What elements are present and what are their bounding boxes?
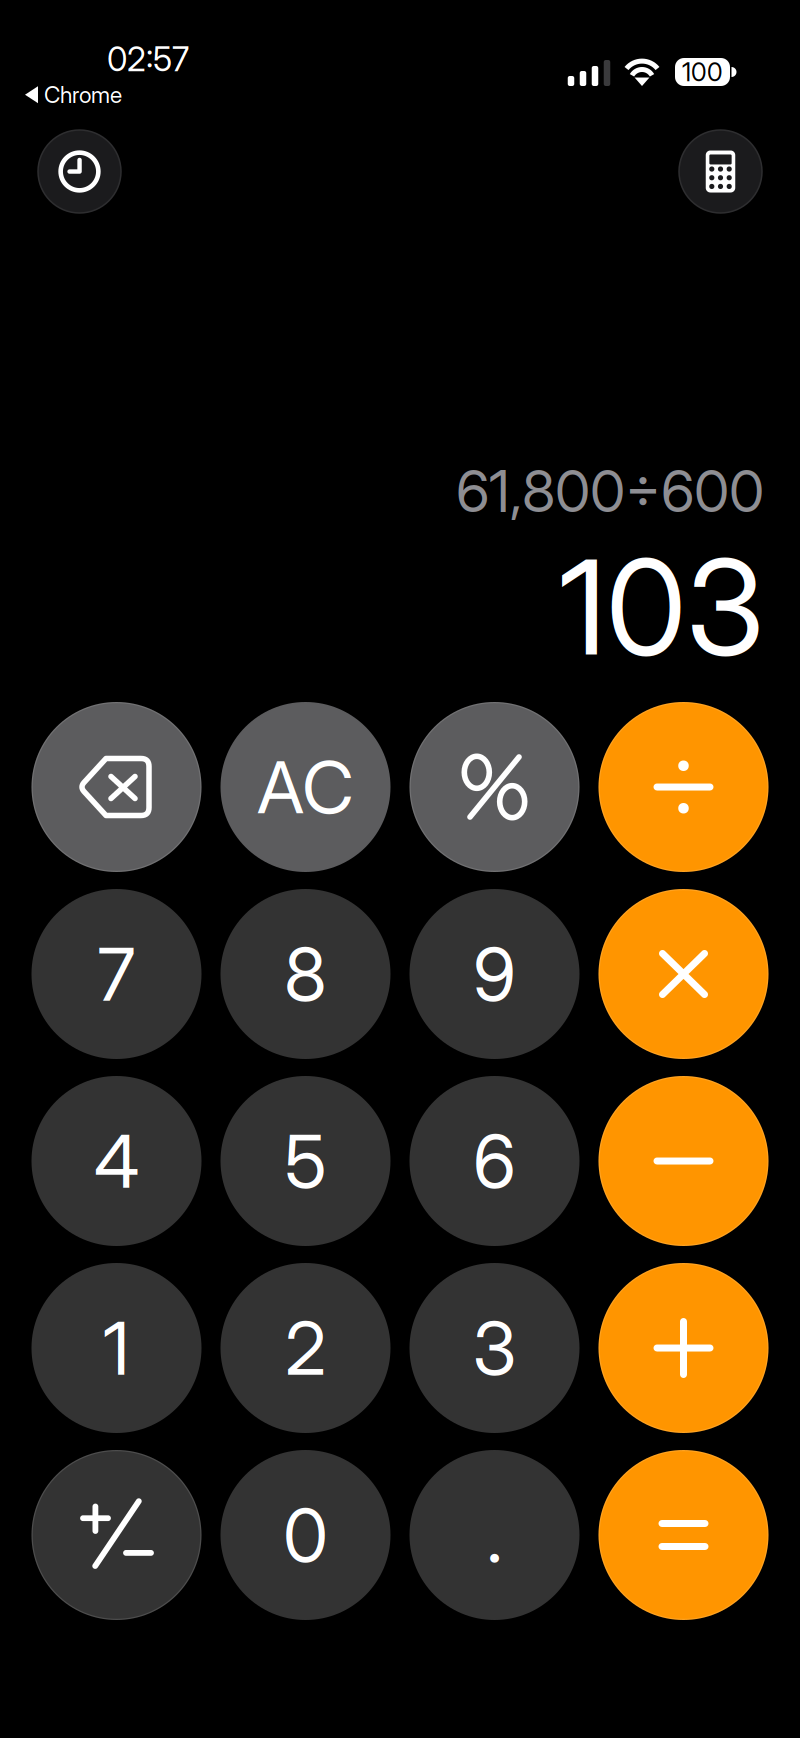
- button[interactable]: History: [38, 130, 121, 213]
- staticText: 02:57: [107, 39, 189, 79]
- button[interactable]: 2: [220, 1263, 391, 1433]
- staticText: 61,800÷600: [456, 456, 764, 526]
- button[interactable]: 7: [31, 889, 202, 1059]
- staticText: 103: [559, 528, 764, 686]
- button[interactable]: 6: [409, 1076, 580, 1246]
- staticText: 7: [97, 930, 135, 1018]
- button[interactable]: Calculator: [679, 130, 762, 213]
- button[interactable]: .: [409, 1450, 580, 1620]
- staticText: 3: [472, 1304, 516, 1392]
- button[interactable]: 4: [31, 1076, 202, 1246]
- staticText: 2: [285, 1304, 326, 1392]
- staticText: 100: [682, 57, 723, 87]
- button[interactable]: Equals: [598, 1450, 769, 1620]
- button[interactable]: 0: [220, 1450, 391, 1620]
- button[interactable]: Percent: [409, 702, 580, 872]
- button[interactable]: Divide: [598, 702, 769, 872]
- staticText: 8: [284, 930, 327, 1018]
- staticText: Chrome: [44, 81, 122, 108]
- button[interactable]: AC: [220, 702, 391, 872]
- button[interactable]: 8: [220, 889, 391, 1059]
- button[interactable]: Plus: [598, 1263, 769, 1433]
- staticText: 9: [473, 930, 516, 1018]
- staticText: .: [486, 1491, 502, 1579]
- button[interactable]: 5: [220, 1076, 391, 1246]
- button[interactable]: Plus minus: [31, 1450, 202, 1620]
- button[interactable]: Chrome: [25, 81, 122, 108]
- button[interactable]: Multiply: [598, 889, 769, 1059]
- button[interactable]: Minus: [598, 1076, 769, 1246]
- button[interactable]: 9: [409, 889, 580, 1059]
- staticText: 5: [284, 1117, 326, 1205]
- button[interactable]: Delete: [31, 702, 202, 872]
- button[interactable]: 3: [409, 1263, 580, 1433]
- staticText: 1: [103, 1304, 130, 1392]
- staticText: 0: [283, 1491, 328, 1579]
- staticText: 6: [473, 1117, 516, 1205]
- staticText: AC: [257, 743, 354, 830]
- staticText: 4: [94, 1117, 139, 1205]
- button[interactable]: 1: [31, 1263, 202, 1433]
